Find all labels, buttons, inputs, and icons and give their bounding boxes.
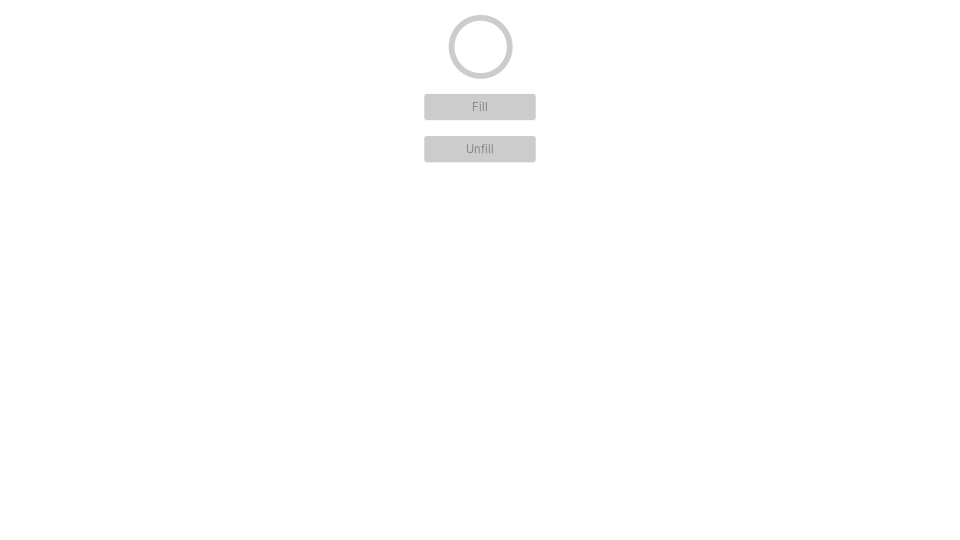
staticText: Fill [472,100,488,114]
button[interactable]: Fill [424,94,536,120]
staticText: Unfill [466,142,494,156]
button[interactable]: Unfill [424,136,536,162]
